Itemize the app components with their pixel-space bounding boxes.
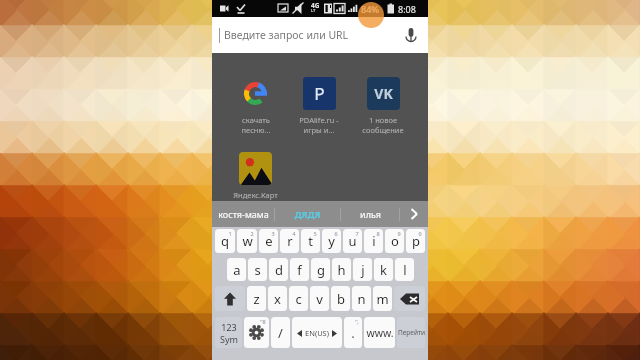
staticText: v — [316, 290, 323, 308]
button[interactable]: Shift — [215, 286, 245, 311]
staticText: 2 — [250, 230, 254, 237]
staticText: m — [376, 290, 389, 308]
staticText: a — [233, 261, 241, 279]
button[interactable]: x — [268, 286, 287, 311]
button[interactable]: 6 — [322, 229, 341, 253]
staticText: '‘, — [355, 318, 359, 325]
button[interactable]: 123 — [215, 317, 242, 348]
staticText: 1 — [228, 230, 232, 237]
button[interactable]: v — [310, 286, 329, 311]
staticText: скачать песню... — [241, 115, 271, 135]
staticText: 7 — [355, 230, 359, 237]
staticText: 9 — [397, 230, 401, 237]
staticText: Перейти — [398, 328, 425, 337]
staticText: n — [357, 290, 366, 308]
button[interactable]: c — [289, 286, 308, 311]
staticText: k — [380, 261, 387, 279]
staticText: VK — [374, 84, 393, 103]
staticText: o — [391, 232, 399, 250]
button[interactable]: Keyboard settings — [244, 317, 269, 348]
staticText: e — [265, 232, 273, 250]
button[interactable]: 4 — [280, 229, 299, 253]
staticText: 0 — [418, 230, 422, 237]
staticText: Яндекс.Карт — [233, 190, 278, 200]
staticText: l — [403, 261, 407, 279]
staticText: h — [337, 261, 346, 279]
button[interactable]: m — [373, 286, 392, 311]
button[interactable]: 9 — [385, 229, 404, 253]
button[interactable]: j — [353, 258, 372, 281]
button[interactable]: Backspace — [394, 286, 425, 311]
button[interactable]: 2 — [237, 229, 257, 253]
button[interactable]: f — [290, 258, 309, 281]
staticText: j — [361, 261, 365, 279]
staticText: www. — [366, 326, 394, 340]
staticText: q — [221, 232, 229, 250]
button[interactable]: костя-мама — [212, 201, 274, 227]
staticText: . — [351, 324, 355, 342]
button[interactable]: k — [374, 258, 393, 281]
staticText: LT — [311, 8, 316, 13]
button[interactable]: 3 — [259, 229, 278, 253]
staticText: '‘8 — [260, 318, 266, 325]
staticText: w — [242, 232, 253, 250]
staticText: t — [308, 232, 313, 250]
button[interactable]: / — [271, 317, 290, 348]
staticText: 4 — [292, 230, 296, 237]
button[interactable]: n — [352, 286, 371, 311]
button[interactable]: илья — [341, 201, 399, 227]
button[interactable]: 8 — [364, 229, 383, 253]
button[interactable]: 0 — [406, 229, 425, 253]
button[interactable]: VK — [351, 77, 415, 135]
button[interactable]: d — [269, 258, 288, 281]
staticText: z — [253, 290, 260, 308]
staticText: d — [275, 261, 283, 279]
button[interactable]: More suggestions — [400, 201, 428, 227]
staticText: P — [314, 82, 325, 105]
button[interactable]: l — [395, 258, 414, 281]
button[interactable]: Перейти — [397, 317, 425, 348]
button[interactable]: ДЯДЯ — [275, 201, 340, 227]
button[interactable]: 5 — [301, 229, 320, 253]
staticText: 8:08 — [398, 3, 416, 15]
staticText: Sym — [220, 333, 238, 345]
staticText: b — [337, 290, 345, 308]
staticText: f — [297, 261, 302, 279]
staticText: костя-мама — [218, 208, 269, 220]
button[interactable]: Яндекс.Карт — [223, 152, 287, 200]
staticText: илья — [360, 208, 381, 220]
staticText: Введите запрос или URL — [224, 28, 349, 42]
staticText: / — [278, 324, 283, 342]
staticText: p — [412, 232, 420, 250]
button[interactable]: '‘, — [344, 317, 362, 348]
staticText: 3 — [271, 230, 275, 237]
staticText: 8 — [376, 230, 380, 237]
button[interactable]: P — [287, 77, 351, 135]
button[interactable]: 7 — [343, 229, 362, 253]
staticText: 84% — [361, 3, 379, 15]
button[interactable]: z — [247, 286, 266, 311]
button[interactable]: скачать песню... — [223, 77, 287, 135]
staticText: i — [372, 232, 376, 250]
button[interactable]: b — [331, 286, 350, 311]
staticText: r — [287, 232, 293, 250]
staticText: 123 — [221, 321, 237, 333]
staticText: u — [348, 232, 357, 250]
staticText: y — [328, 232, 335, 250]
staticText: c — [295, 290, 302, 308]
staticText: 1 новое сообщение — [362, 115, 404, 135]
button[interactable]: h — [332, 258, 351, 281]
staticText: s — [254, 261, 261, 279]
staticText: g — [317, 261, 325, 279]
button[interactable]: a — [227, 258, 246, 281]
button[interactable]: Voice search — [400, 24, 422, 46]
button[interactable]: 1 — [215, 229, 235, 253]
button[interactable]: www. — [364, 317, 395, 348]
button[interactable]: EN(US) — [292, 317, 342, 348]
staticText: 5 — [313, 230, 317, 237]
staticText: ДЯДЯ — [294, 208, 321, 220]
staticText: 4G — [311, 1, 320, 10]
button[interactable]: s — [248, 258, 267, 281]
button[interactable]: g — [311, 258, 330, 281]
staticText: 6 — [334, 230, 338, 237]
